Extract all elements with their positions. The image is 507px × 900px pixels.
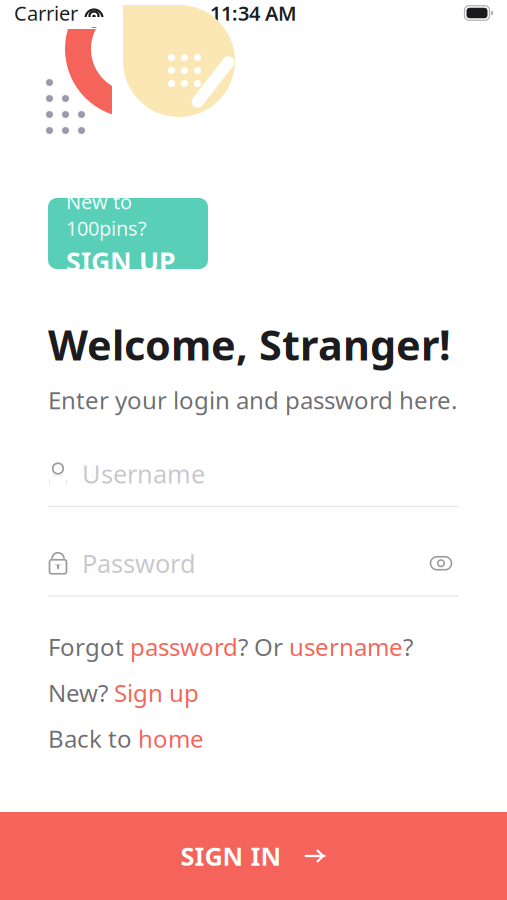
staticText: home bbox=[138, 722, 204, 754]
button[interactable]: SIGN IN bbox=[0, 812, 507, 900]
button[interactable]: home bbox=[138, 722, 204, 754]
staticText: Forgot bbox=[48, 631, 130, 663]
button[interactable]: username bbox=[289, 631, 403, 663]
button[interactable]: Sign up bbox=[114, 677, 199, 708]
staticText: ? Or bbox=[238, 631, 289, 663]
staticText: Password bbox=[82, 546, 196, 580]
staticText: 11:34 AM bbox=[210, 0, 297, 26]
button[interactable]: Show password bbox=[423, 547, 459, 579]
staticText: New to 100pins? bbox=[66, 188, 147, 241]
staticText: ? bbox=[403, 631, 413, 663]
staticText: Username bbox=[82, 457, 205, 490]
button[interactable]: New to 100pins? bbox=[48, 198, 208, 269]
staticText: Sign up bbox=[114, 677, 199, 708]
staticText: Back to bbox=[48, 722, 138, 754]
staticText: username bbox=[289, 631, 403, 663]
staticText: SIGN UP bbox=[66, 243, 176, 279]
staticText: Enter your login and password here. bbox=[48, 384, 457, 416]
staticText: New? bbox=[48, 677, 114, 708]
staticText: Welcome, Stranger! bbox=[48, 317, 451, 372]
staticText: password bbox=[130, 631, 238, 663]
staticText: Carrier bbox=[14, 0, 78, 26]
staticText: SIGN IN bbox=[180, 839, 281, 873]
button[interactable]: password bbox=[130, 631, 238, 663]
